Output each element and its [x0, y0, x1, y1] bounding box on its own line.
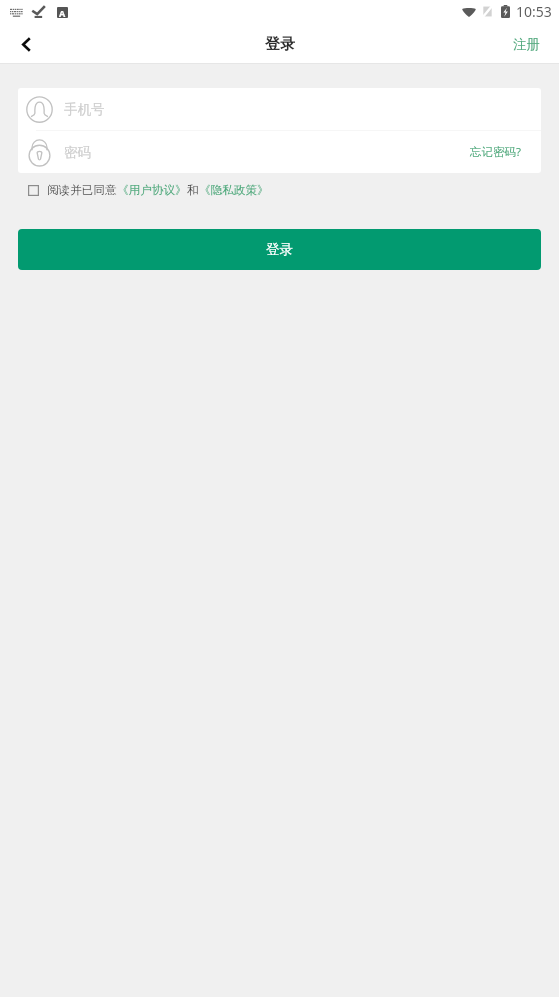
button[interactable]: Agree to terms: [22, 175, 117, 205]
staticText: 登录: [265, 35, 295, 54]
staticText: 《隐私政策》: [199, 183, 269, 198]
button[interactable]: 登录: [18, 229, 541, 270]
button[interactable]: 手机号: [18, 88, 541, 130]
staticText: 阅读并已同意: [47, 183, 117, 198]
staticText: 忘记密码?: [470, 144, 521, 160]
button[interactable]: 《隐私政策》: [199, 175, 269, 205]
button[interactable]: 密码: [18, 131, 541, 173]
button[interactable]: 忘记密码?: [470, 131, 521, 173]
staticText: 手机号: [64, 101, 105, 118]
staticText: 密码: [64, 144, 91, 161]
staticText: 《用户协议》: [117, 183, 187, 198]
other: Agree to terms: [28, 185, 39, 196]
staticText: 和: [187, 183, 199, 198]
staticText: 登录: [266, 241, 293, 258]
button[interactable]: 《用户协议》: [117, 175, 187, 205]
button[interactable]: Back: [0, 26, 52, 62]
staticText: 注册: [513, 36, 540, 53]
staticText: 10:53: [516, 2, 552, 21]
button[interactable]: 注册: [499, 26, 559, 62]
staticText: A: [59, 7, 66, 18]
